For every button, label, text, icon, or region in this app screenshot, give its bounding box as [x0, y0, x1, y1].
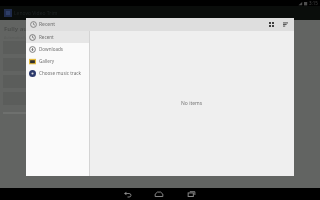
- staticText: Automatically generate a video: [4, 35, 55, 40]
- staticText: No items: [181, 100, 203, 107]
- staticText: Recent: [39, 21, 56, 28]
- button[interactable]: Back: [116, 188, 138, 200]
- button[interactable]: Home: [148, 188, 170, 200]
- staticText: Lenovo Video Trim: [14, 10, 58, 17]
- button[interactable]: Gallery: [26, 55, 89, 67]
- staticText: Fully automatic: [4, 25, 51, 33]
- button[interactable]: Sort: [279, 18, 292, 31]
- button[interactable]: Grid view: [265, 18, 278, 31]
- staticText: Downloads: [39, 46, 64, 52]
- staticText: Gallery: [39, 58, 55, 64]
- button[interactable]: Downloads: [26, 43, 89, 55]
- button[interactable]: Recent: [26, 31, 89, 43]
- button[interactable]: Recent apps: [180, 188, 202, 200]
- button[interactable]: Choose music track: [26, 67, 89, 79]
- staticText: 3:15: [309, 0, 318, 6]
- staticText: Choose music track: [39, 70, 81, 76]
- staticText: Recent: [39, 34, 54, 40]
